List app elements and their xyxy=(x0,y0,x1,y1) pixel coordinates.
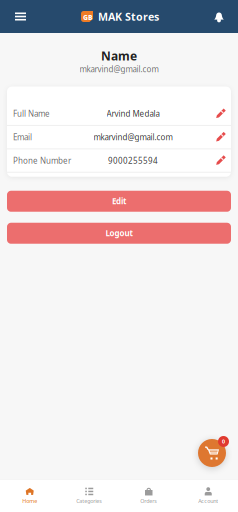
staticText: mkarvind@gmail.com xyxy=(79,64,158,74)
button[interactable]: Home xyxy=(0,479,59,512)
staticText: Name xyxy=(101,48,137,64)
button[interactable]: Cart xyxy=(195,436,229,470)
staticText: mkarvind@gmail.com xyxy=(93,132,172,142)
staticText: Logout xyxy=(105,228,132,238)
staticText: GB xyxy=(83,13,92,22)
staticText: Orders xyxy=(140,497,157,505)
staticText: 0 xyxy=(222,438,225,445)
button[interactable]: Categories xyxy=(59,479,119,512)
button[interactable]: Edit Phone Number xyxy=(191,150,225,172)
button[interactable]: Edit Full Name xyxy=(191,103,225,125)
button[interactable]: Logout xyxy=(7,223,231,244)
staticText: Categories xyxy=(76,497,102,505)
button[interactable]: Orders xyxy=(119,479,178,512)
staticText: Full Name xyxy=(13,108,50,119)
staticText: Edit xyxy=(112,196,126,206)
staticText: Phone Number xyxy=(13,155,71,166)
staticText: 9000255594 xyxy=(108,155,158,166)
staticText: Arvind Medala xyxy=(106,108,159,119)
button[interactable]: Notifications xyxy=(205,5,238,27)
button[interactable]: Menu xyxy=(0,5,35,27)
button[interactable]: Account xyxy=(178,479,238,512)
staticText: Home xyxy=(22,497,37,505)
staticText: Account xyxy=(198,497,218,505)
staticText: Email xyxy=(13,132,32,142)
button[interactable]: Edit Email xyxy=(191,126,225,148)
button[interactable]: Edit xyxy=(7,191,231,212)
staticText: MAK Stores xyxy=(98,9,159,24)
